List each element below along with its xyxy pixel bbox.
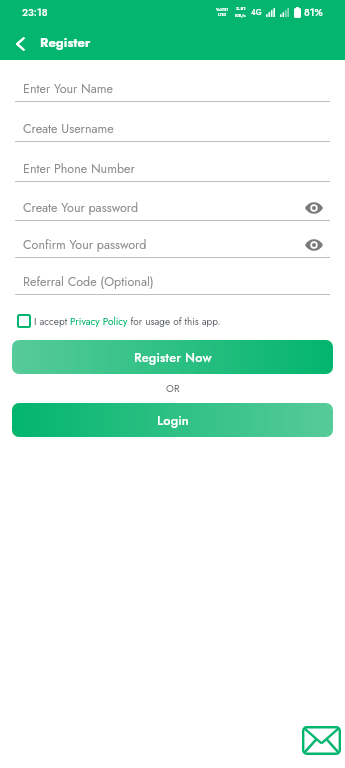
staticText: Enter Phone Number (23, 160, 135, 178)
staticText: Create Username (23, 120, 114, 138)
staticText: 81% (304, 5, 323, 19)
staticText: 2.81 (236, 5, 246, 12)
button[interactable]: Referral Code (Optional) (15, 270, 330, 295)
staticText: Referral Code (Optional) (23, 273, 154, 291)
staticText: 4G (251, 7, 262, 18)
staticText: Register Now (134, 348, 212, 366)
staticText: Enter Your Name (23, 80, 113, 98)
button[interactable]: Mail (302, 726, 341, 755)
button[interactable]: Back (2, 26, 38, 62)
staticText: LTE2 (218, 12, 227, 17)
staticText: VoLTE1 (216, 7, 229, 12)
button[interactable]: Accept privacy policy (17, 314, 31, 328)
staticText: Login (157, 411, 189, 429)
staticText: Confirm Your password (23, 236, 147, 254)
staticText: KB/s (235, 12, 246, 19)
button[interactable]: Enter Your Name (15, 77, 330, 102)
staticText: OR (166, 381, 180, 394)
button[interactable]: Create Your password (15, 196, 330, 221)
staticText: Create Your password (23, 199, 139, 217)
staticText: 23:18 (22, 5, 48, 19)
button[interactable]: Create Username (15, 117, 330, 142)
button[interactable]: Confirm Your password (15, 233, 330, 258)
button[interactable]: Login (12, 403, 333, 437)
staticText: I accept Privacy Policy for usage of thi… (34, 314, 221, 328)
other: Toggle password visibility (305, 199, 323, 217)
other: Toggle password visibility (305, 236, 323, 254)
staticText: Register (40, 33, 91, 52)
button[interactable]: Enter Phone Number (15, 157, 330, 182)
button[interactable]: Register Now (12, 340, 333, 374)
